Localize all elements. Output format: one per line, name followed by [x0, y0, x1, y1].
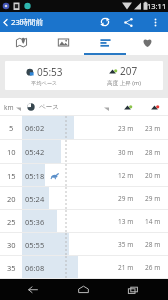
staticText: 平均ペース	[31, 80, 58, 87]
button[interactable]: 35	[0, 256, 168, 279]
button[interactable]: ペース	[27, 98, 59, 116]
staticText: 29 m	[118, 194, 134, 203]
staticText: 05:42	[25, 147, 45, 157]
button[interactable]: 207	[84, 61, 163, 90]
staticText: 25	[7, 217, 16, 227]
staticText: 06:08	[25, 263, 45, 273]
button[interactable]: 10	[0, 140, 168, 164]
staticText: 13:11	[147, 1, 167, 11]
staticText: 10	[7, 147, 16, 157]
button[interactable]: More options	[146, 12, 164, 32]
staticText: 23 m	[145, 124, 161, 133]
staticText: 207	[120, 64, 138, 78]
button[interactable]: Back	[12, 279, 52, 300]
staticText: 23時間前	[11, 17, 44, 28]
staticText: 28 m	[145, 240, 161, 249]
staticText: 29 m	[145, 194, 161, 203]
staticText: 23 m	[118, 124, 134, 133]
button[interactable]: 05:53	[5, 61, 84, 90]
staticText: 5	[9, 123, 14, 133]
button[interactable]: Splits	[84, 32, 126, 55]
button[interactable]: 15	[0, 164, 168, 187]
staticText: 12 m	[118, 171, 134, 180]
staticText: 35	[7, 263, 16, 273]
staticText: 20 m	[145, 171, 161, 180]
staticText: 30 m	[118, 148, 134, 157]
button[interactable]: Home	[63, 279, 103, 300]
staticText: 05:53	[37, 65, 63, 79]
button[interactable]: Sync	[94, 12, 116, 32]
staticText: 06:02	[25, 123, 45, 133]
staticText: 30	[7, 240, 16, 250]
staticText: 21 m	[118, 263, 134, 272]
button[interactable]: km	[0, 98, 22, 116]
button[interactable]: Photos	[42, 32, 84, 55]
button[interactable]: Elevation gain	[112, 98, 143, 116]
button[interactable]: 30	[0, 233, 168, 256]
button[interactable]: Share	[118, 12, 139, 32]
button[interactable]: Favorite	[126, 32, 168, 55]
button[interactable]: Recents	[113, 279, 153, 300]
staticText: 35 m	[118, 240, 134, 249]
staticText: 13 m	[118, 217, 134, 226]
button[interactable]: Back	[0, 12, 11, 32]
staticText: 28 m	[145, 148, 161, 157]
staticText: 05:55	[25, 240, 45, 250]
staticText: 高度 上昇 (m)	[107, 79, 141, 87]
button[interactable]: 20	[0, 187, 168, 210]
staticText: 26 m	[145, 263, 161, 272]
staticText: 20	[7, 194, 16, 204]
staticText: 05:18	[25, 171, 45, 181]
staticText: 14 m	[145, 217, 161, 226]
staticText: 15	[7, 171, 16, 181]
button[interactable]: Map	[0, 32, 42, 55]
button[interactable]: 25	[0, 210, 168, 233]
staticText: 05:36	[25, 217, 45, 227]
staticText: ペース	[39, 103, 59, 111]
button[interactable]: 5	[0, 116, 168, 140]
staticText: 05:24	[25, 194, 45, 204]
staticText: km	[4, 103, 14, 112]
button[interactable]: Elevation loss	[142, 98, 168, 116]
